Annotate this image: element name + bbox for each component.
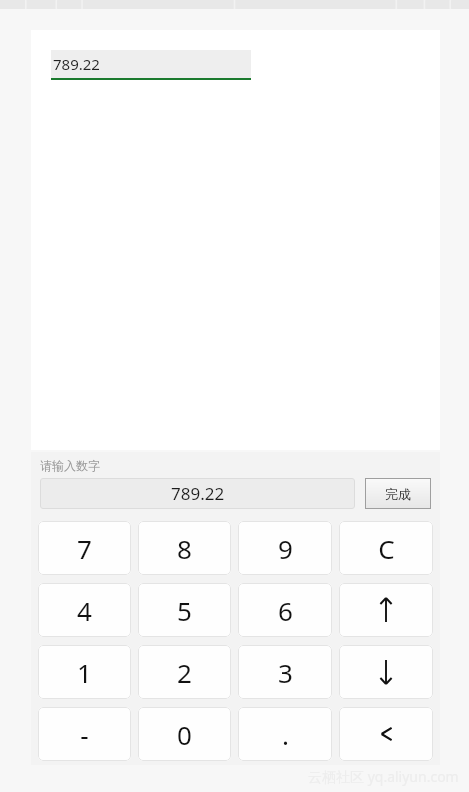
button[interactable]: Up — [339, 583, 433, 637]
staticText: 6 — [278, 593, 293, 628]
staticText: C — [378, 531, 395, 566]
staticText: 3 — [278, 655, 293, 690]
button[interactable]: Clear — [339, 521, 433, 575]
staticText: 4 — [77, 593, 92, 628]
button[interactable]: Digit 8 — [138, 521, 231, 575]
button[interactable]: Digit 1 — [38, 645, 131, 699]
button[interactable]: Digit 2 — [138, 645, 231, 699]
button[interactable]: Decimal point — [238, 707, 332, 761]
button[interactable]: 789.22 — [40, 478, 355, 509]
button[interactable]: Backspace — [339, 707, 433, 761]
staticText: 789.22 — [53, 54, 100, 74]
staticText: 7 — [77, 531, 92, 566]
staticText: - — [80, 717, 89, 752]
staticText: 5 — [177, 593, 192, 628]
button[interactable]: Digit 5 — [138, 583, 231, 637]
button[interactable]: Digit 0 — [138, 707, 231, 761]
button[interactable]: Digit 4 — [38, 583, 131, 637]
staticText: 请输入数字 — [40, 458, 100, 473]
button[interactable]: 789.22 — [51, 50, 251, 78]
button[interactable]: 完成 — [365, 478, 431, 509]
staticText: . — [282, 717, 289, 752]
button[interactable]: Digit 6 — [238, 583, 332, 637]
staticText: 完成 — [385, 486, 411, 502]
staticText: 8 — [177, 531, 192, 566]
staticText: 云栖社区 yq.aliyun.com — [308, 767, 459, 786]
button[interactable]: Digit 3 — [238, 645, 332, 699]
staticText: 0 — [177, 717, 192, 752]
button[interactable]: Minus — [38, 707, 131, 761]
staticText: 789.22 — [171, 482, 225, 505]
button[interactable]: Down — [339, 645, 433, 699]
staticText: 9 — [278, 531, 293, 566]
staticText: 2 — [177, 655, 192, 690]
button[interactable]: Digit 7 — [38, 521, 131, 575]
staticText: 1 — [77, 655, 92, 690]
button[interactable]: Digit 9 — [238, 521, 332, 575]
